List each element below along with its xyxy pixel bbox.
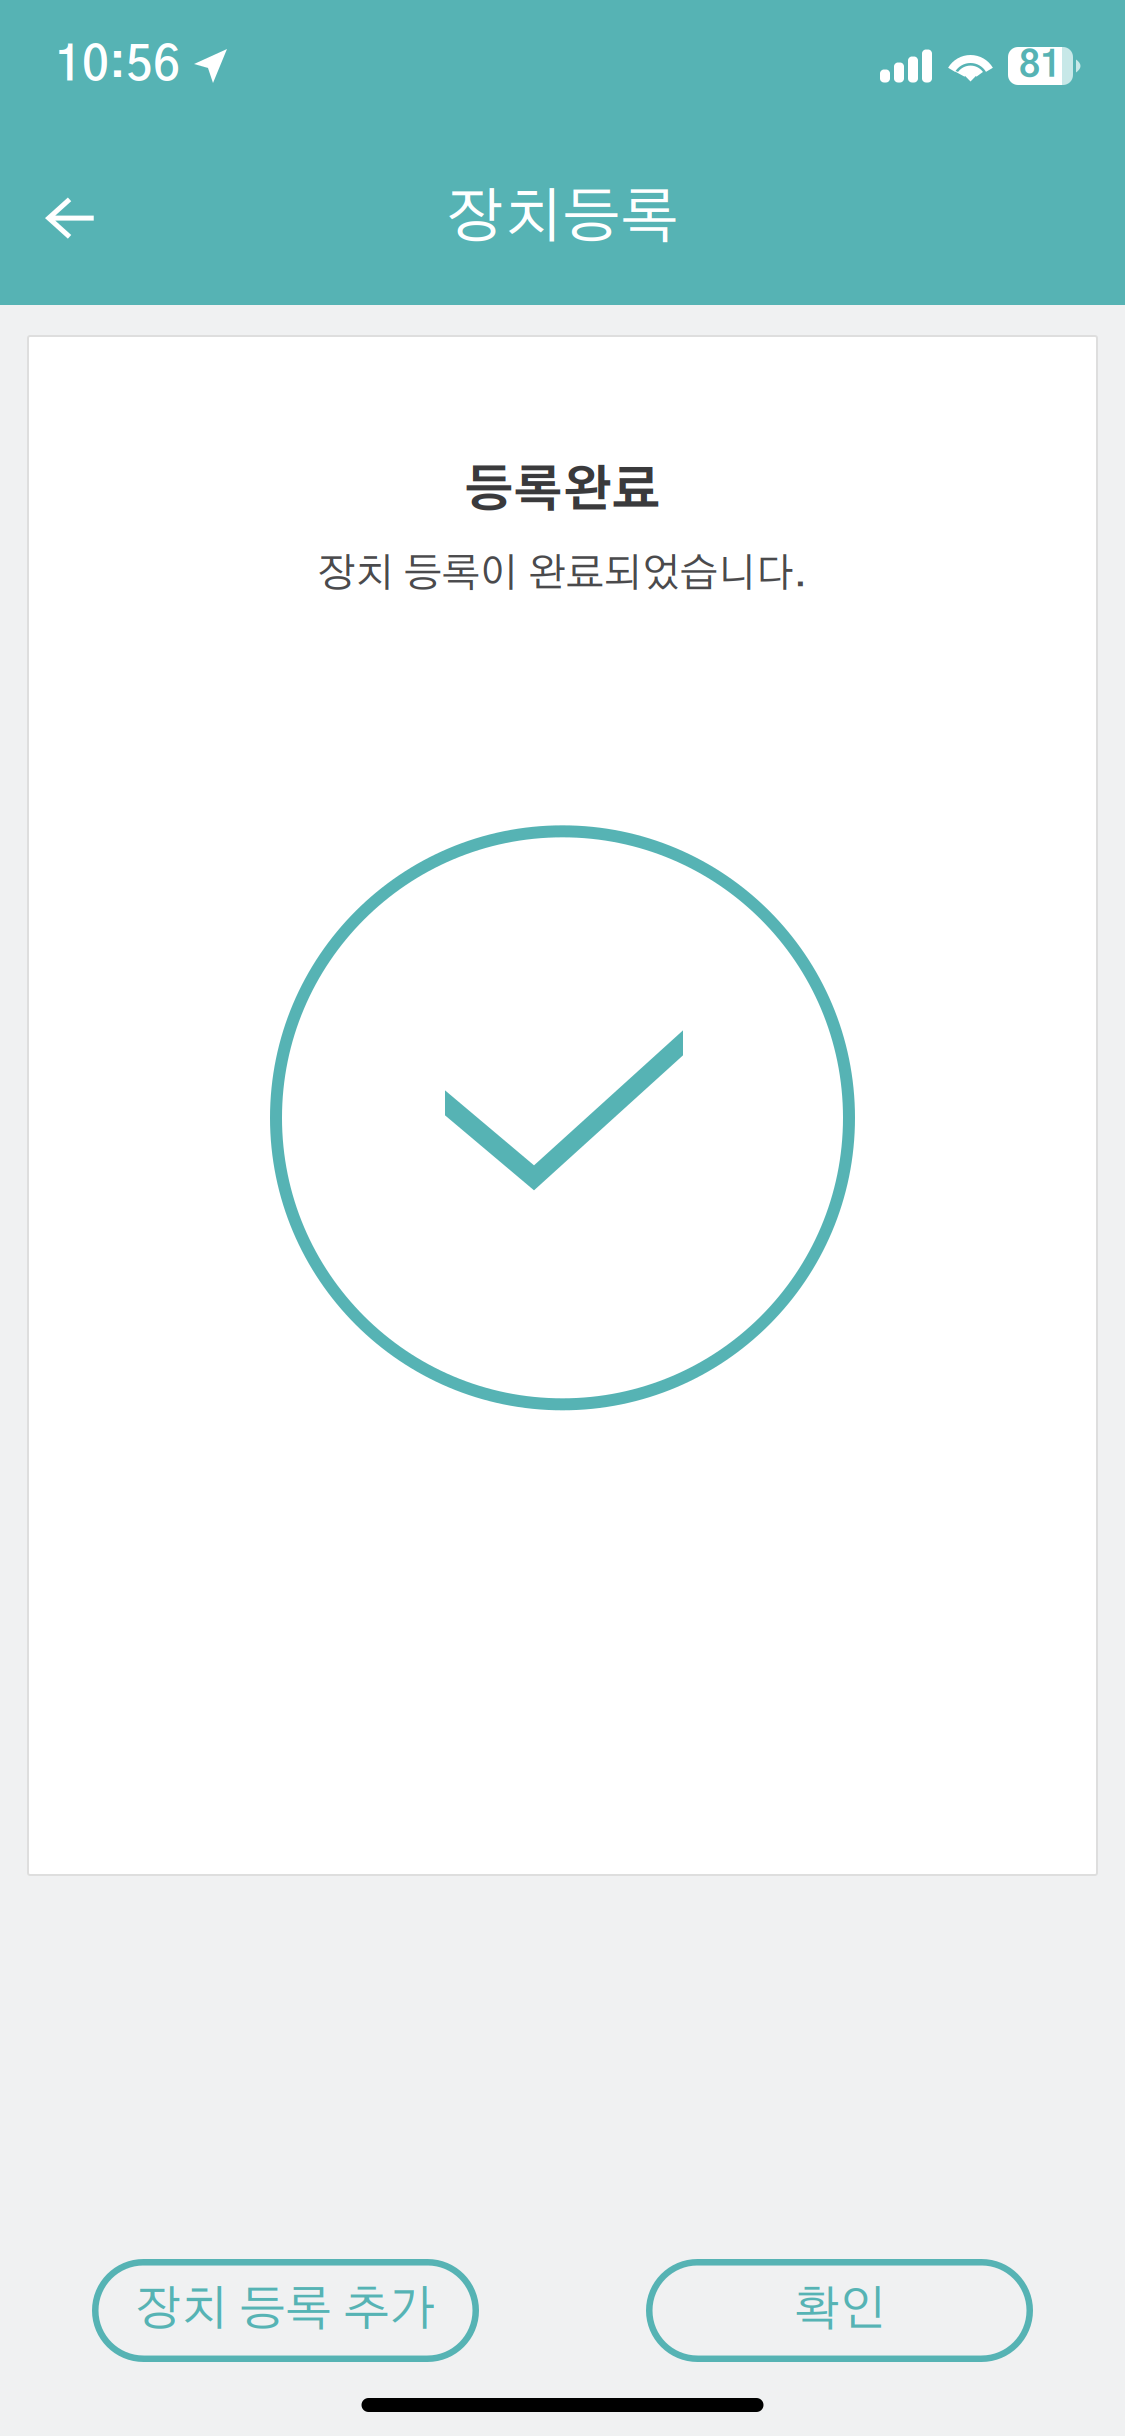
staticText: 등록완료	[464, 467, 660, 516]
staticText: 장치등록	[446, 188, 678, 248]
button[interactable]: Back	[0, 165, 129, 271]
button[interactable]: 장치 등록 추가	[92, 2259, 479, 2362]
staticText: 81	[1019, 48, 1061, 84]
staticText: 10:56	[55, 43, 180, 89]
staticText: 장치 등록 추가	[135, 2286, 435, 2334]
staticText: 장치 등록이 완료되었습니다.	[317, 554, 807, 594]
button[interactable]: 확인	[646, 2259, 1033, 2362]
staticText: 확인	[793, 2286, 885, 2334]
